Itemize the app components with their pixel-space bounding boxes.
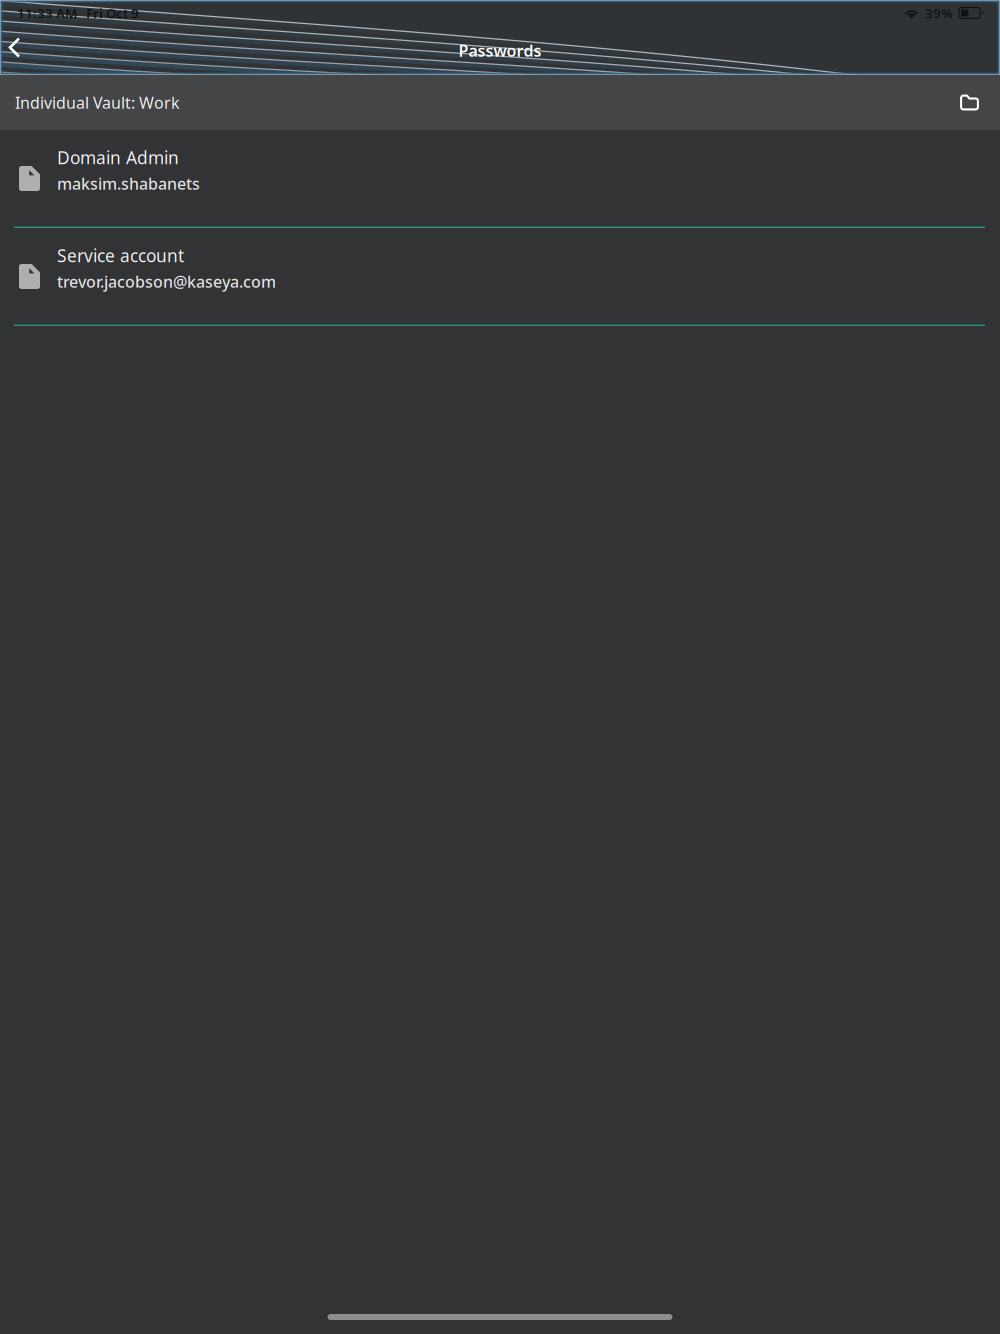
button[interactable]: Folders	[949, 83, 990, 121]
staticText: Domain Admin	[57, 146, 179, 169]
staticText: 11:33 AM Fri Oct 9	[17, 4, 139, 22]
staticText: Passwords	[458, 40, 541, 61]
staticText: Service account	[57, 244, 184, 267]
button[interactable]: Back	[8, 35, 38, 65]
button[interactable]: Domain Admin	[0, 130, 1000, 228]
staticText: Individual Vault: Work	[15, 92, 180, 113]
staticText: 39%	[925, 4, 953, 22]
button[interactable]: Service account	[0, 228, 1000, 326]
staticText: trevor.jacobson@kaseya.com	[57, 271, 276, 292]
staticText: maksim.shabanets	[57, 173, 200, 194]
